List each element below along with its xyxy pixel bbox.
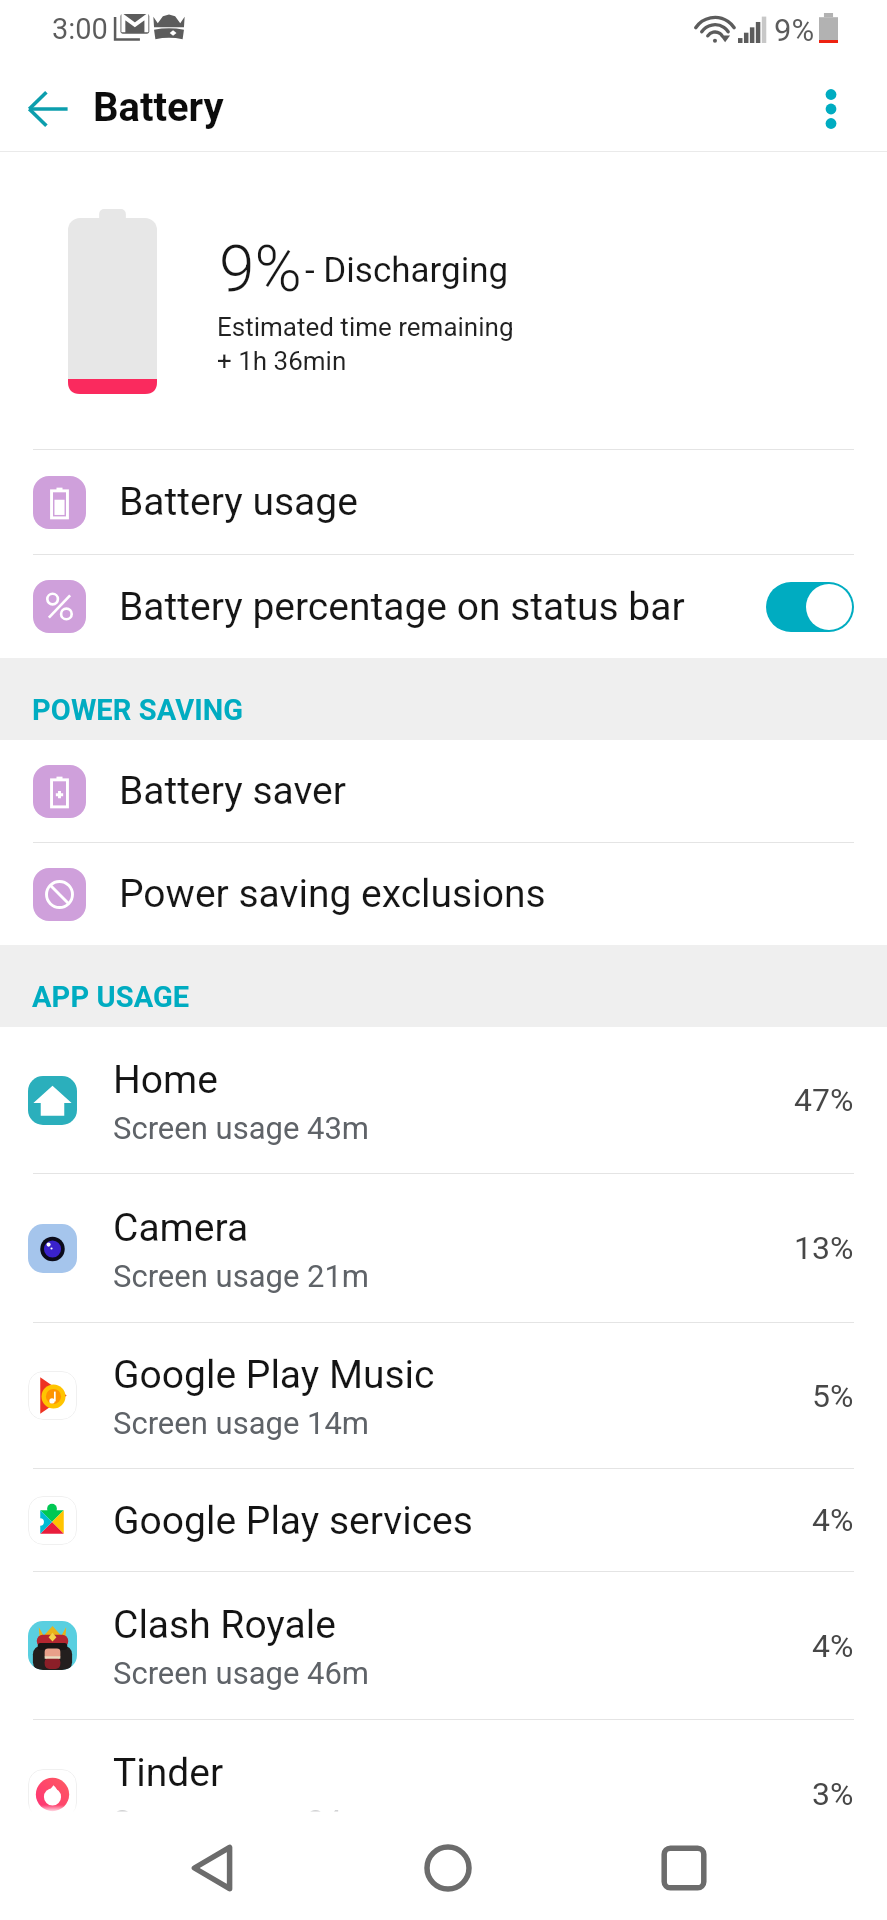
staticText: 9%: [774, 12, 815, 48]
staticText: Battery usage: [119, 479, 358, 525]
staticText: POWER SAVING: [32, 693, 244, 727]
button[interactable]: Tinder: [0, 1720, 887, 1867]
staticText: 4%: [812, 1501, 854, 1539]
button[interactable]: Battery usage: [0, 450, 887, 554]
staticText: 13%: [794, 1229, 854, 1267]
button[interactable]: Clash Royale: [0, 1572, 887, 1719]
staticText: Camera: [113, 1205, 249, 1251]
staticText: Screen usage 43m: [113, 1110, 370, 1146]
staticText: - Discharging: [305, 250, 509, 291]
button[interactable]: Power saving exclusions: [0, 843, 887, 945]
staticText: APP USAGE: [32, 980, 190, 1014]
staticText: Screen usage 46m: [113, 1655, 370, 1691]
button[interactable]: Back: [170, 1826, 254, 1910]
staticText: Estimated time remaining: [217, 312, 514, 342]
button[interactable]: Google Play Music: [0, 1323, 887, 1468]
button[interactable]: Recent apps: [642, 1826, 726, 1910]
button[interactable]: Back: [12, 73, 84, 145]
staticText: Power saving exclusions: [119, 871, 546, 917]
staticText: 4%: [812, 1627, 854, 1665]
button[interactable]: Battery saver: [0, 740, 887, 842]
button[interactable]: Toggle battery percentage on status bar: [766, 582, 854, 632]
staticText: Battery percentage on status bar: [119, 584, 685, 630]
button[interactable]: Camera: [0, 1174, 887, 1322]
button[interactable]: Google Play services: [0, 1469, 887, 1571]
staticText: Screen usage 21m: [113, 1258, 370, 1294]
staticText: 3:00: [52, 12, 108, 46]
staticText: Screen usage 14m: [113, 1405, 370, 1441]
staticText: Clash Royale: [113, 1602, 336, 1648]
staticText: 47%: [794, 1081, 854, 1119]
staticText: 3%: [812, 1775, 854, 1813]
staticText: Battery: [93, 84, 224, 131]
staticText: + 1h 36min: [217, 346, 347, 376]
button[interactable]: More options: [795, 73, 867, 145]
button[interactable]: Home: [0, 1027, 887, 1173]
button[interactable]: Home: [406, 1826, 490, 1910]
staticText: Google Play Music: [113, 1352, 435, 1398]
staticText: Google Play services: [113, 1498, 473, 1544]
staticText: 9%: [219, 232, 302, 307]
staticText: Battery saver: [119, 768, 346, 814]
staticText: Tinder: [113, 1750, 224, 1796]
staticText: 5%: [812, 1377, 854, 1415]
button[interactable]: Battery percentage on status bar: [0, 555, 887, 658]
staticText: Home: [113, 1057, 218, 1103]
